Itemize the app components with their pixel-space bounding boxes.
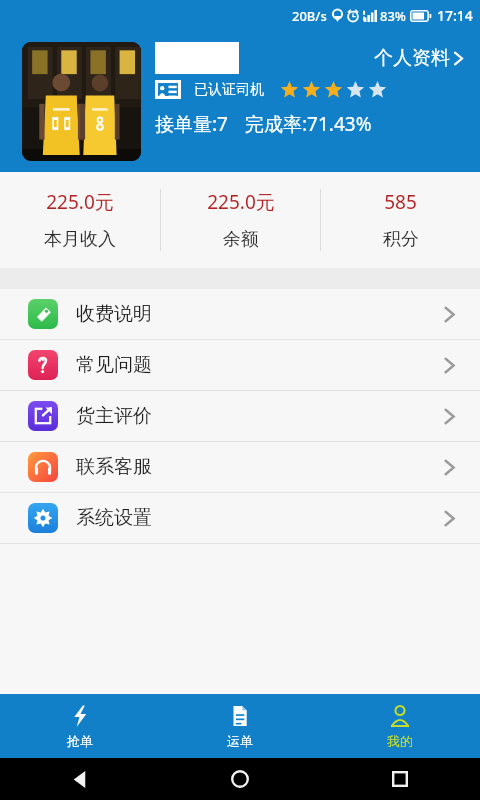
- button[interactable]: 585: [321, 172, 480, 268]
- staticText: 我的: [387, 733, 413, 749]
- button[interactable]: Home: [160, 758, 320, 800]
- button[interactable]: Avatar: [22, 42, 141, 161]
- staticText: 接单量:7: [155, 111, 228, 137]
- button[interactable]: 个人资料: [368, 46, 466, 70]
- button[interactable]: 常见问题: [0, 340, 480, 390]
- staticText: 本月收入: [44, 228, 116, 251]
- staticText: 余额: [223, 228, 259, 251]
- staticText: 货主评价: [76, 404, 152, 428]
- staticText: 联系客服: [76, 455, 152, 479]
- button[interactable]: 225.0元: [161, 172, 320, 268]
- staticText: 完成率:71.43%: [245, 111, 372, 137]
- button[interactable]: Back: [0, 758, 160, 800]
- button[interactable]: 货主评价: [0, 391, 480, 441]
- staticText: 585: [384, 189, 417, 215]
- button[interactable]: 运单: [160, 694, 320, 758]
- button[interactable]: 收费说明: [0, 289, 480, 339]
- staticText: 运单: [227, 733, 253, 749]
- staticText: 83%: [380, 7, 406, 25]
- staticText: 225.0元: [207, 189, 275, 215]
- staticText: 收费说明: [76, 302, 152, 326]
- staticText: 个人资料: [374, 46, 450, 70]
- button[interactable]: 联系客服: [0, 442, 480, 492]
- button[interactable]: Recent apps: [320, 758, 480, 800]
- button[interactable]: 我的: [320, 694, 480, 758]
- staticText: 17:14: [437, 6, 473, 25]
- button[interactable]: 系统设置: [0, 493, 480, 543]
- staticText: 抢单: [67, 733, 93, 749]
- button[interactable]: 抢单: [0, 694, 160, 758]
- staticText: 225.0元: [46, 189, 114, 215]
- button[interactable]: 225.0元: [0, 172, 160, 268]
- staticText: 20B/s: [292, 7, 327, 25]
- staticText: 积分: [383, 228, 419, 251]
- staticText: 已认证司机: [194, 81, 264, 99]
- staticText: 系统设置: [76, 506, 152, 530]
- staticText: 常见问题: [76, 353, 152, 377]
